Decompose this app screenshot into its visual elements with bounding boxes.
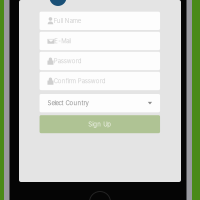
button[interactable]: Confirm Password (39, 72, 160, 90)
staticText: E-Mail (54, 37, 71, 45)
staticText: Full Name (54, 17, 81, 24)
staticText: Sign Up (88, 121, 111, 128)
staticText: Confirm Password (54, 77, 106, 85)
button[interactable]: Password (39, 52, 160, 70)
button[interactable]: E-Mail (39, 32, 160, 50)
button[interactable]: Full Name (39, 12, 160, 30)
button[interactable]: Select Country (39, 94, 160, 112)
staticText: Password (54, 57, 82, 65)
staticText: Select Country (47, 99, 88, 107)
button[interactable]: Sign Up (39, 115, 160, 133)
